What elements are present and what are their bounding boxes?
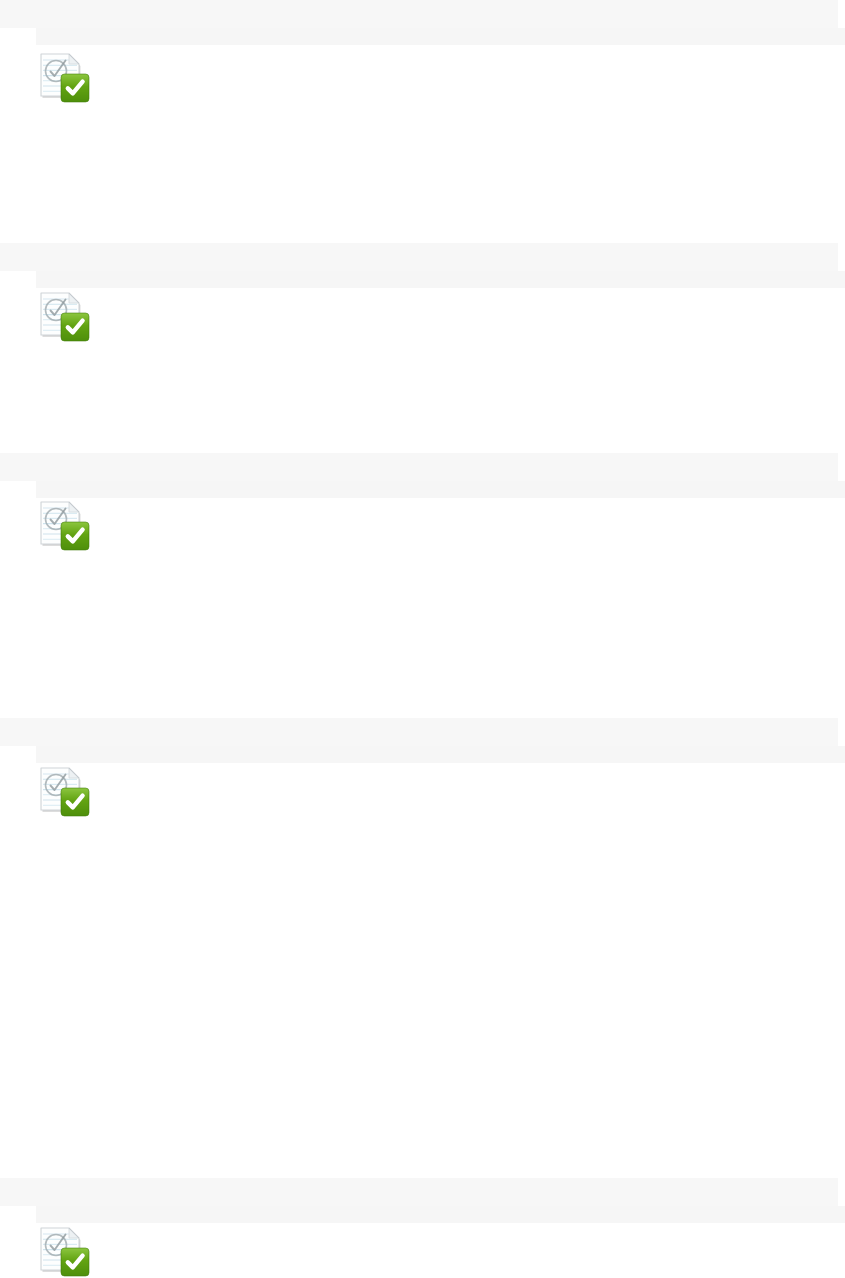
button[interactable]: Completed document (0, 0, 845, 243)
other: Completed document (39, 766, 91, 818)
button[interactable]: Completed document (0, 243, 845, 453)
other: Completed document (39, 291, 91, 343)
button[interactable]: Completed document (0, 718, 845, 1178)
other: Completed document (39, 500, 91, 552)
other: Completed document (39, 52, 91, 104)
button[interactable]: Completed document (0, 1178, 845, 1278)
other: Completed document (39, 1226, 91, 1278)
button[interactable]: Completed document (0, 453, 845, 718)
